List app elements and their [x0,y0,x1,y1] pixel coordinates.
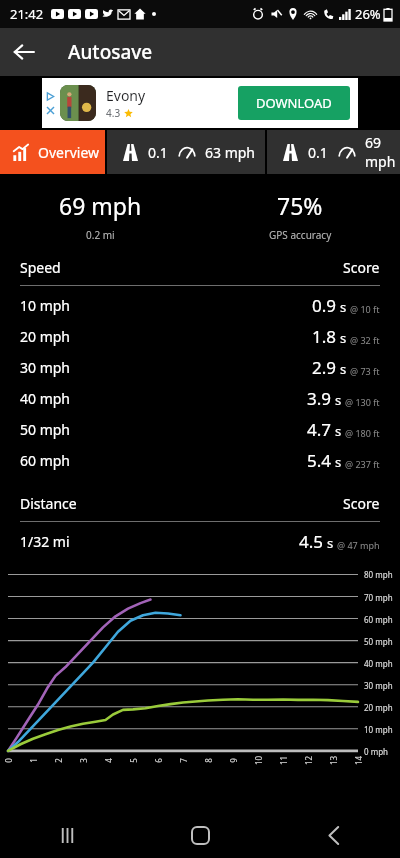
staticText: s [340,329,347,347]
staticText: 3 [78,755,89,766]
button[interactable]: Home [134,812,267,858]
staticText: 9 [228,755,239,766]
staticText: 2 [53,755,64,766]
button[interactable]: 30 mph [0,352,400,383]
staticText: 20 mph [364,702,393,713]
staticText: @ 180 ft [345,427,380,439]
staticText: 50 mph [364,636,393,647]
staticText: 2.9 [312,356,337,379]
staticText: 8 [203,755,214,766]
button[interactable]: 50 mph [0,414,400,445]
staticText: 5.4 [307,449,332,472]
staticText: Score [343,494,380,513]
staticText: 0 mph [364,746,388,757]
staticText: s [340,298,347,316]
staticText: GPS accuracy [269,228,332,242]
button[interactable]: 60 mph [0,445,400,476]
staticText: 30 mph [20,358,71,377]
staticText: 10 [253,755,264,766]
button[interactable]: Recent apps [0,812,134,858]
staticText: 40 mph [364,658,393,669]
staticText: DOWNLOAD [256,94,332,112]
button[interactable]: DOWNLOAD [238,86,350,120]
staticText: 60 mph [20,451,71,470]
staticText: 30 mph [364,680,393,691]
staticText: 7 [178,755,189,766]
staticText: Score [343,258,380,277]
staticText: 5 [128,755,139,766]
button[interactable]: Evony [42,78,358,128]
staticText: 0.2 mi [86,228,115,242]
staticText: @ 47 mph [337,539,380,551]
staticText: @ 130 ft [345,396,380,408]
staticText: Autosave [68,39,153,65]
staticText: Evony [106,86,146,105]
staticText: s [335,422,342,440]
staticText: @ 32 ft [350,334,380,346]
staticText: 0.1 [148,143,168,162]
staticText: 1.8 [312,325,337,348]
staticText: s [340,360,347,378]
staticText: Overview [38,143,100,162]
button[interactable]: 40 mph [0,383,400,414]
staticText: 63 mph [205,143,256,162]
staticText: 4 [103,755,114,766]
staticText: Distance [20,494,77,513]
staticText: 1/32 mi [20,532,70,551]
button[interactable]: 1/32 mi [0,526,400,557]
button[interactable]: 10 mph [0,290,400,321]
staticText: @ 237 ft [345,458,380,470]
staticText: 4.5 [299,530,324,553]
button[interactable]: 20 mph [0,321,400,352]
staticText: 20 mph [20,327,71,346]
staticText: Speed [20,258,61,277]
staticText: 0.9 [312,294,337,317]
button[interactable]: 0.1 [107,130,265,174]
staticText: 75% [277,190,323,221]
staticText: 70 mph [364,592,393,603]
staticText: 4.7 [307,418,332,441]
staticText: 80 mph [364,569,393,580]
button[interactable]: Overview [0,130,105,174]
staticText: 40 mph [20,389,71,408]
staticText: s [327,534,334,552]
staticText: 26% [355,5,381,23]
staticText: 0 [3,755,14,766]
staticText: 69 mph [59,190,142,221]
staticText: 10 mph [364,724,393,735]
staticText: 12 [303,755,314,766]
staticText: s [335,391,342,409]
staticText: 13 [328,755,339,766]
staticText: 6 [153,755,164,766]
button[interactable]: 0.1 [267,130,400,174]
staticText: 50 mph [20,420,71,439]
button[interactable]: Back [0,28,48,76]
staticText: 0.1 [308,143,328,162]
staticText: @ 10 ft [350,303,380,315]
staticText: 1 [28,755,39,766]
staticText: 69 mph [365,133,400,171]
staticText: 4.3 [106,106,121,120]
button[interactable]: Back [267,812,400,858]
staticText: 10 mph [20,296,71,315]
staticText: s [335,453,342,471]
staticText: 21:42 [10,5,44,23]
staticText: 60 mph [364,614,393,625]
staticText: 11 [278,755,289,766]
staticText: 14 [353,755,364,766]
staticText: @ 73 ft [350,365,380,377]
staticText: 3.9 [307,387,332,410]
